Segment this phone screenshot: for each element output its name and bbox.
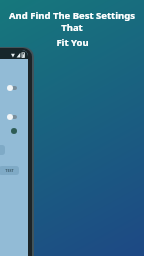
button[interactable]: HD <box>0 145 5 155</box>
button[interactable]: Toggle off <box>0 83 28 93</box>
staticText: Fit You <box>56 36 89 49</box>
staticText: TEST <box>5 168 14 173</box>
staticText: And Find The Best Settings That <box>5 9 139 34</box>
button[interactable]: Toggle off <box>0 112 28 122</box>
button[interactable]: TEST <box>0 166 19 175</box>
button[interactable]: Setting enabled <box>0 126 28 136</box>
